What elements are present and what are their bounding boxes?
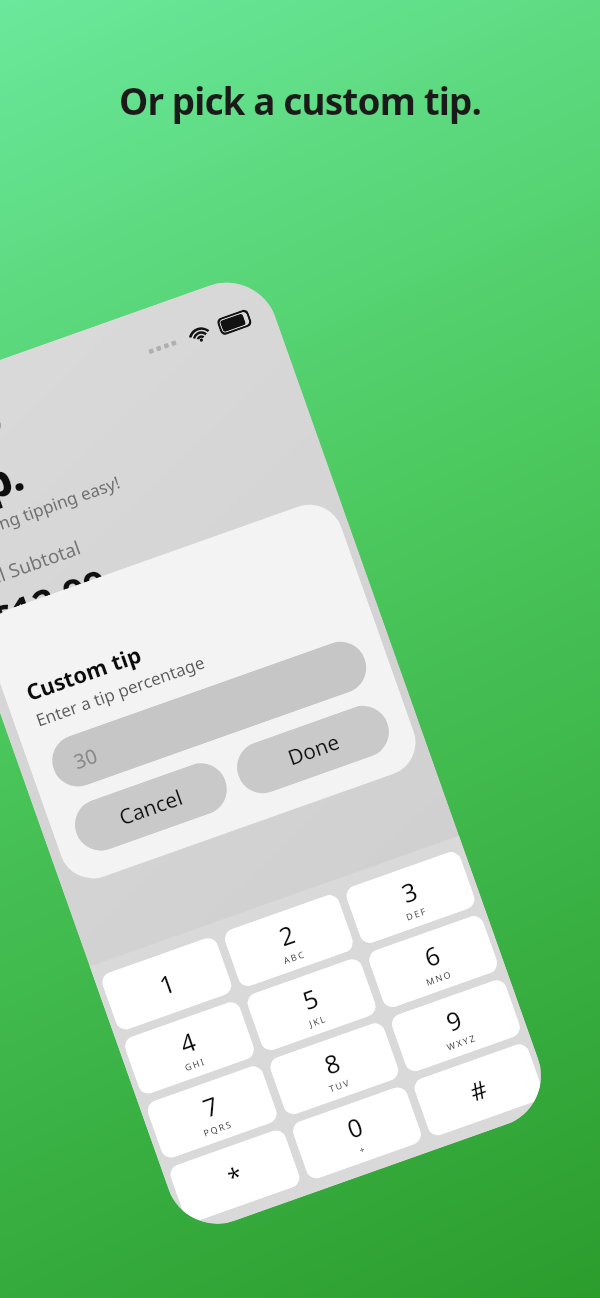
- button[interactable]: 9: [389, 977, 523, 1074]
- staticText: *: [223, 1158, 247, 1194]
- button[interactable]: Done: [230, 699, 396, 800]
- staticText: 0: [342, 1109, 368, 1146]
- staticText: Making tipping easy!: [0, 470, 123, 548]
- button[interactable]: 15%: [3, 635, 117, 712]
- staticText: Round up: [105, 675, 205, 735]
- button[interactable]: 4: [122, 999, 257, 1096]
- button[interactable]: #: [411, 1041, 546, 1138]
- button[interactable]: 0: [290, 1084, 424, 1181]
- staticText: PQRS: [202, 1117, 234, 1139]
- button[interactable]: *: [167, 1127, 302, 1225]
- staticText: Custom tip: [22, 639, 145, 707]
- staticText: 6: [419, 937, 445, 974]
- button[interactable]: 5: [244, 956, 379, 1053]
- staticText: $12.99: [0, 556, 114, 645]
- staticText: +: [357, 1142, 368, 1156]
- button[interactable]: 8: [267, 1020, 401, 1117]
- staticText: 5: [298, 980, 323, 1017]
- staticText: 4: [175, 1023, 201, 1061]
- staticText: DEF: [404, 904, 429, 923]
- staticText: GHI: [183, 1055, 207, 1073]
- staticText: Bill Subtotal: [0, 534, 84, 595]
- staticText: JKL: [307, 1012, 328, 1029]
- button[interactable]: 1: [99, 935, 234, 1032]
- staticText: 2: [274, 916, 300, 953]
- staticText: WXYZ: [445, 1031, 478, 1053]
- other: Battery: [216, 308, 253, 336]
- staticText: Done: [284, 727, 343, 772]
- button[interactable]: 20%: [110, 597, 223, 674]
- staticText: Cancel: [115, 783, 187, 832]
- staticText: 7: [198, 1088, 223, 1125]
- button[interactable]: 7: [145, 1063, 280, 1161]
- button[interactable]: 30: [45, 635, 373, 794]
- staticText: #: [465, 1071, 492, 1109]
- staticText: Enter a tip percentage: [33, 650, 208, 731]
- other: Wi-Fi: [186, 321, 213, 348]
- staticText: ABC: [282, 947, 307, 966]
- button[interactable]: 3: [343, 849, 477, 946]
- staticText: Tip.: [0, 444, 31, 526]
- staticText: 9: [441, 1001, 467, 1039]
- staticText: 3: [397, 873, 422, 910]
- button[interactable]: 6: [366, 913, 500, 1010]
- staticText: 30: [70, 742, 101, 775]
- staticText: 1: [154, 965, 180, 1002]
- staticText: TUV: [327, 1075, 353, 1094]
- staticText: 8: [319, 1045, 345, 1082]
- staticText: 15%: [39, 655, 81, 691]
- staticText: MNO: [424, 967, 454, 988]
- button[interactable]: 2: [222, 892, 356, 989]
- staticText: Or pick a custom tip.: [14, 75, 586, 125]
- button[interactable]: Round up: [31, 616, 367, 763]
- button[interactable]: Cancel: [68, 756, 234, 858]
